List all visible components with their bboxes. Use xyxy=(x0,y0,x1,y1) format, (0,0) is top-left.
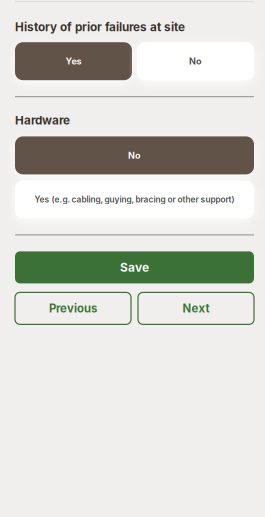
staticText: No xyxy=(189,56,202,67)
staticText: No xyxy=(128,150,141,161)
button[interactable]: No xyxy=(15,136,254,174)
staticText: Yes (e.g. cabling, guying, bracing or ot… xyxy=(34,194,234,204)
staticText: Next xyxy=(182,301,209,315)
button[interactable]: Next xyxy=(138,292,254,324)
button[interactable]: Previous xyxy=(15,292,131,324)
staticText: Previous xyxy=(49,301,97,315)
staticText: Hardware xyxy=(15,113,70,127)
staticText: Yes xyxy=(65,56,81,67)
button[interactable]: Save xyxy=(15,251,254,283)
staticText: Save xyxy=(120,260,149,275)
button[interactable]: Yes xyxy=(15,42,132,80)
staticText: History of prior failures at site xyxy=(15,20,185,34)
button[interactable]: No xyxy=(137,42,254,80)
button[interactable]: Yes (e.g. cabling, guying, bracing or ot… xyxy=(15,180,254,218)
